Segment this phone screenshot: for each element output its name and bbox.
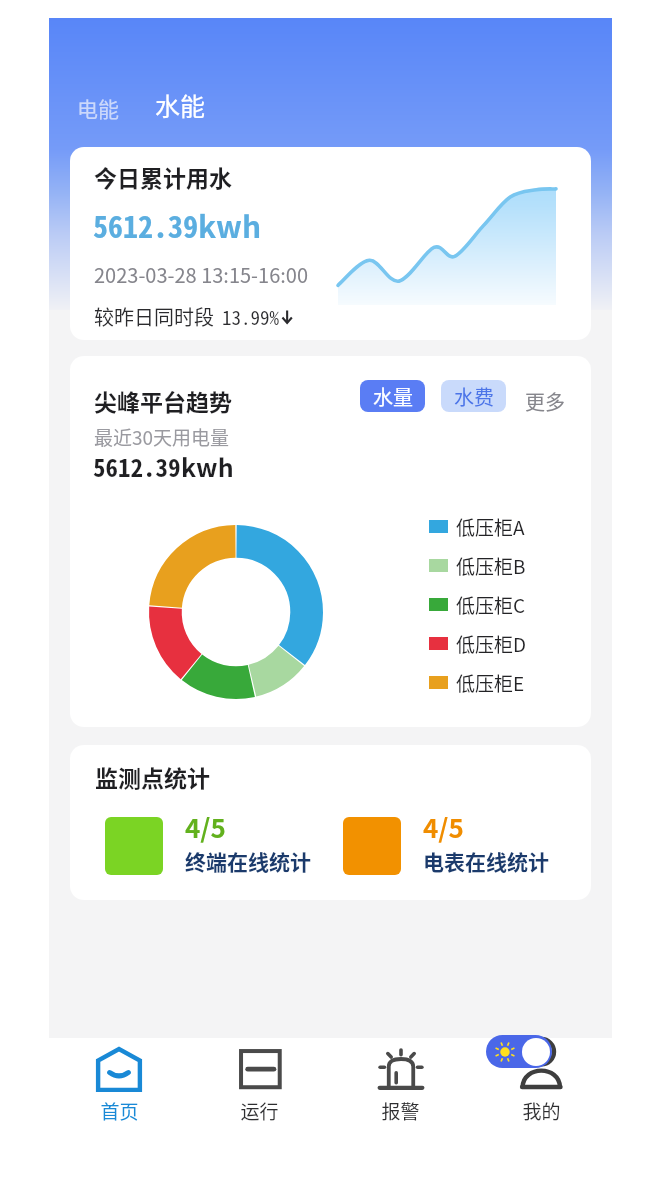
button[interactable]: 电能	[73, 90, 123, 126]
staticText: 4/5	[423, 808, 464, 846]
button[interactable]: 首页	[49, 1038, 189, 1158]
staticText: 终端在线统计	[185, 846, 311, 876]
staticText: 13.99%	[222, 303, 280, 331]
button[interactable]: 水费	[441, 380, 506, 412]
staticText: 监测点统计	[95, 760, 210, 793]
staticText: 5612.39	[93, 203, 198, 246]
staticText: 低压柜C	[456, 591, 526, 619]
button[interactable]: 报警	[330, 1038, 471, 1158]
button[interactable]: 4/5	[105, 817, 289, 885]
staticText: 2023-03-28 13:15-16:00	[94, 260, 309, 289]
staticText: 低压柜A	[456, 513, 525, 541]
staticText: 我的	[522, 1097, 561, 1125]
staticText: 更多	[525, 387, 565, 416]
staticText: 尖峰平台趋势	[94, 384, 232, 417]
staticText: 水费	[454, 382, 494, 411]
staticText: 低压柜B	[456, 552, 526, 580]
staticText: 水能	[155, 87, 206, 123]
staticText: 低压柜D	[456, 630, 527, 658]
staticText: kwh	[181, 448, 234, 484]
staticText: 报警	[381, 1097, 420, 1125]
staticText: 5612.39	[93, 448, 181, 484]
button[interactable]: 4/5	[343, 817, 527, 885]
staticText: 水量	[373, 382, 413, 411]
staticText: 首页	[100, 1097, 139, 1125]
button[interactable]: Toggle light mode	[486, 1035, 552, 1068]
staticText: 最近30天用电量	[94, 423, 230, 451]
staticText: 运行	[240, 1097, 279, 1125]
staticText: kwh	[198, 203, 262, 246]
button[interactable]: 水量	[360, 380, 425, 412]
button[interactable]: 水能	[151, 84, 210, 126]
staticText: 电能	[77, 93, 119, 123]
button[interactable]: 我的	[471, 1038, 612, 1158]
staticText: 较昨日同时段	[94, 302, 214, 331]
button[interactable]: 更多	[520, 382, 570, 421]
staticText: 低压柜E	[456, 669, 525, 697]
button[interactable]: 运行	[189, 1038, 330, 1158]
staticText: 4/5	[185, 808, 226, 846]
staticText: 电表在线统计	[423, 846, 549, 876]
staticText: 今日累计用水	[94, 160, 232, 193]
button[interactable]: 今日累计用水	[70, 147, 591, 340]
